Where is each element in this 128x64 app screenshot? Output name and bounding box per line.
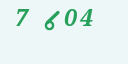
other: Eco	[42, 9, 62, 33]
button[interactable]: 7	[0, 0, 128, 64]
staticText: 4	[80, 1, 93, 32]
staticText: 0	[64, 1, 77, 32]
staticText: 7	[15, 1, 28, 32]
